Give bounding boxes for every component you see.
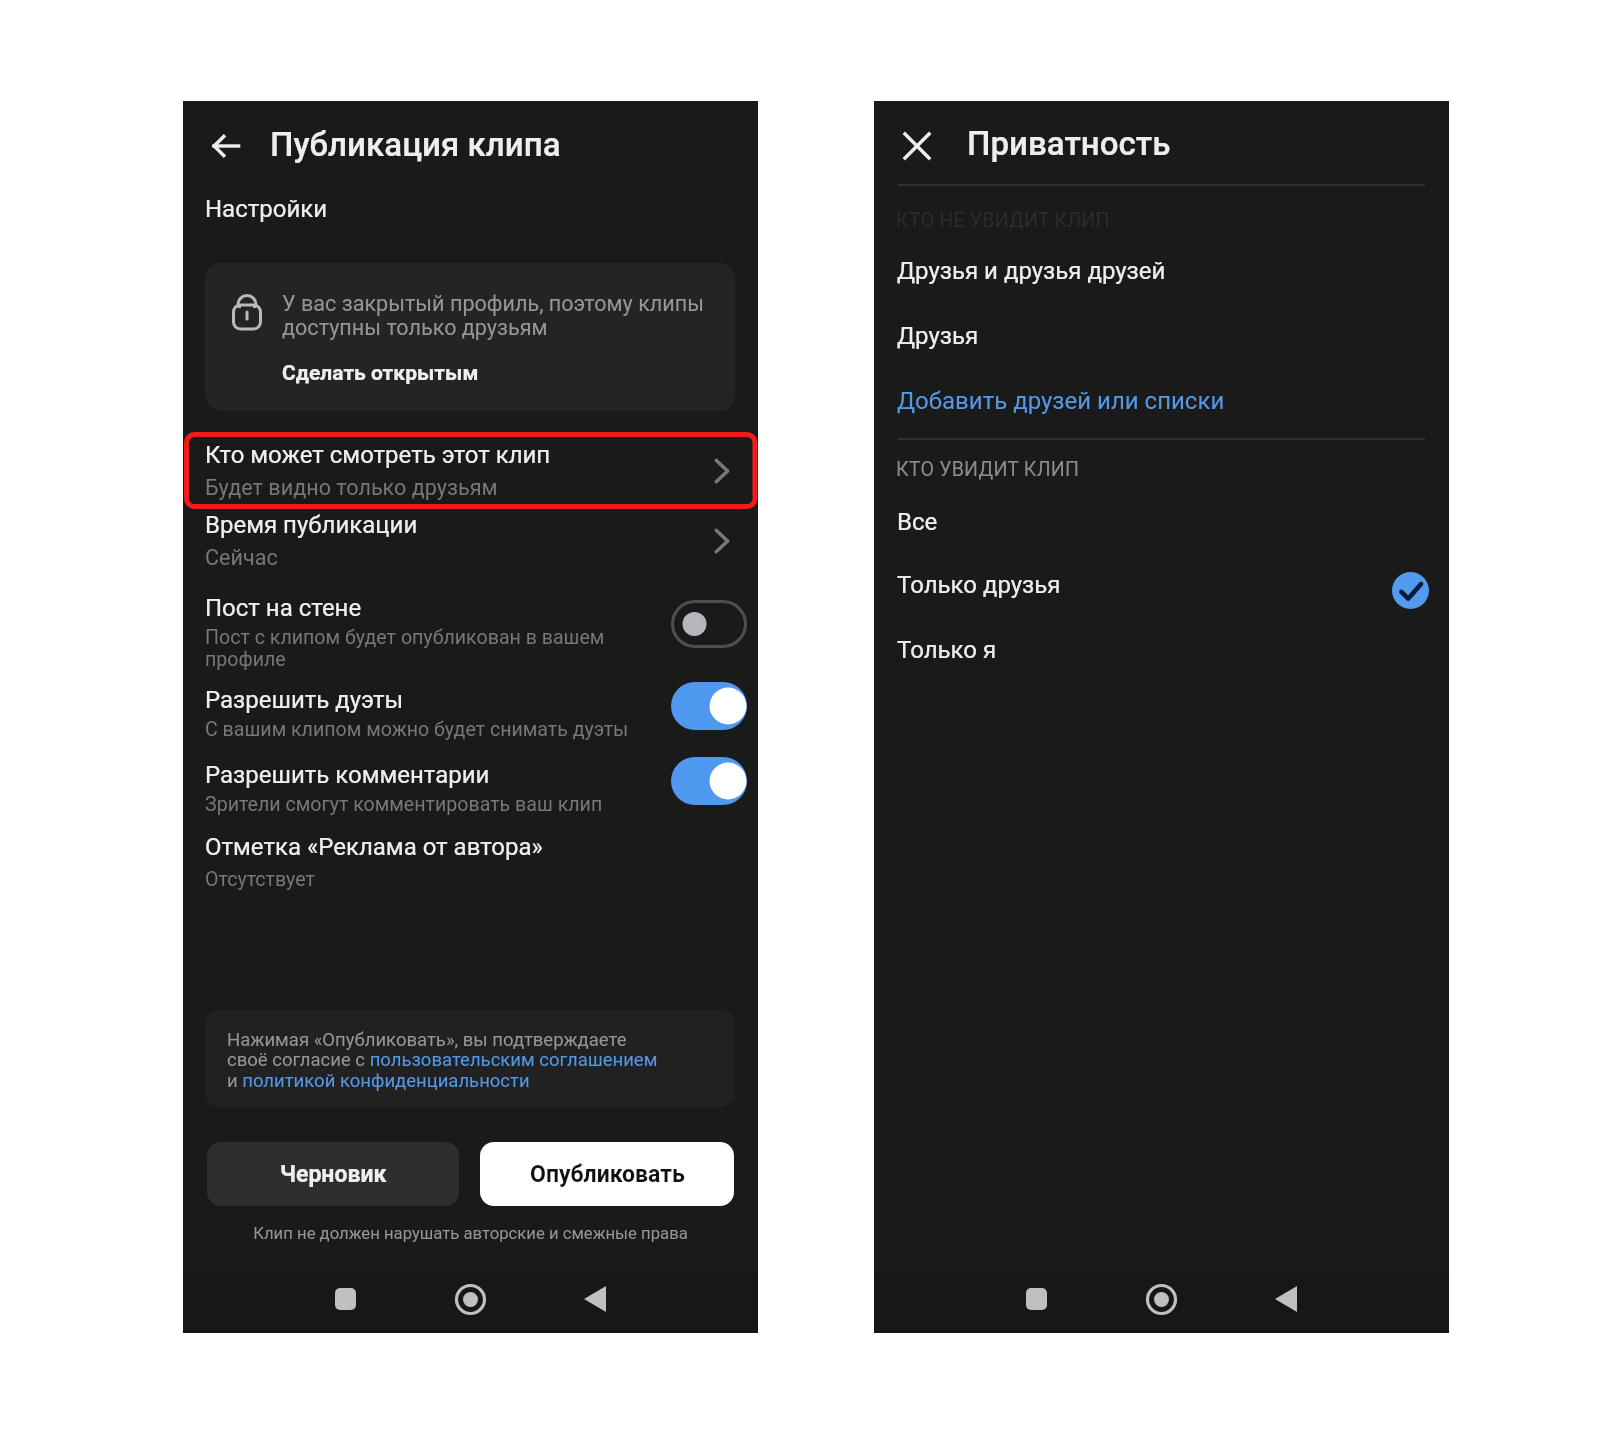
button[interactable]: Back xyxy=(1258,1271,1314,1327)
button[interactable]: Back xyxy=(567,1271,623,1327)
staticText: Друзья xyxy=(897,322,1429,350)
staticText: Опубликовать xyxy=(530,1161,685,1188)
staticText: Клип не должен нарушать авторские и смеж… xyxy=(183,1224,758,1244)
button[interactable]: Все xyxy=(874,490,1449,554)
staticText: Разрешить дуэты xyxy=(205,686,404,714)
staticText: Кто может смотреть этот клип xyxy=(205,441,551,469)
staticText: У вас закрытый профиль, поэтому клипы до… xyxy=(282,291,712,341)
button[interactable]: Черновик xyxy=(207,1142,459,1206)
button[interactable]: Только я xyxy=(874,618,1449,682)
button[interactable]: Off xyxy=(671,600,747,648)
staticText: Нажимая «Опубликовать», вы подтверждаете… xyxy=(227,1029,658,1092)
button[interactable]: Back xyxy=(198,118,254,174)
staticText: Сейчас xyxy=(205,545,278,570)
button[interactable]: Разрешить комментарии xyxy=(183,754,758,823)
staticText: Друзья и друзья друзей xyxy=(897,257,1429,285)
staticText: Будет видно только друзьям xyxy=(205,475,498,500)
button[interactable]: On xyxy=(671,682,747,730)
button[interactable]: Только друзья xyxy=(874,553,1449,617)
staticText: Пост с клипом будет опубликован в вашем … xyxy=(205,626,655,671)
button[interactable]: Друзья xyxy=(874,304,1449,368)
button[interactable]: Опубликовать xyxy=(480,1142,734,1206)
staticText: Пост на стене xyxy=(205,594,362,622)
staticText: Сделать открытым xyxy=(282,361,479,386)
button[interactable]: Время публикации xyxy=(183,502,758,579)
staticText: Разрешить комментарии xyxy=(205,761,490,789)
staticText: КТО УВИДИТ КЛИП xyxy=(896,458,1080,481)
button[interactable]: Сделать открытым xyxy=(282,361,479,386)
button[interactable]: Close xyxy=(889,118,945,174)
staticText: С вашим клипом можно будет снимать дуэты xyxy=(205,718,629,741)
staticText: Отсутствует xyxy=(205,868,315,891)
staticText: Черновик xyxy=(280,1161,387,1188)
button[interactable]: Recent apps xyxy=(1008,1271,1064,1327)
button[interactable]: Разрешить дуэты xyxy=(183,679,758,748)
button[interactable]: Home xyxy=(1133,1271,1189,1327)
button[interactable]: Кто может смотреть этот клип xyxy=(183,432,758,509)
button[interactable]: Отметка «Реклама от автора» xyxy=(183,823,758,898)
button[interactable]: Home xyxy=(442,1271,498,1327)
staticText: Только друзья xyxy=(897,571,1392,599)
button[interactable]: Друзья и друзья друзей xyxy=(874,239,1449,303)
staticText: Все xyxy=(897,508,1429,536)
button[interactable]: On xyxy=(671,757,747,805)
button[interactable]: Recent apps xyxy=(317,1271,373,1327)
button[interactable]: Добавить друзей или списки xyxy=(874,369,1449,433)
staticText: Зрители смогут комментировать ваш клип xyxy=(205,793,603,816)
button[interactable]: Пост на стене xyxy=(183,582,758,682)
staticText: Приватность xyxy=(967,124,1171,163)
staticText: Публикация клипа xyxy=(270,125,561,164)
staticText: Только я xyxy=(897,636,1429,664)
staticText: Добавить друзей или списки xyxy=(897,387,1429,415)
staticText: Отметка «Реклама от автора» xyxy=(205,833,543,861)
staticText: КТО НЕ УВИДИТ КЛИП xyxy=(896,209,1110,232)
staticText: Настройки xyxy=(205,195,328,223)
staticText: Время публикации xyxy=(205,511,418,539)
